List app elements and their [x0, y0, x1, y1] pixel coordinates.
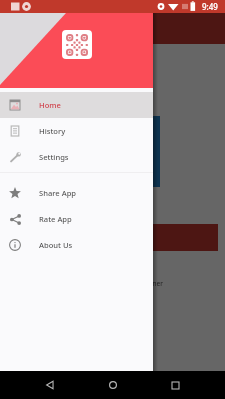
- button[interactable]: Rate App: [0, 206, 153, 232]
- button[interactable]: Home: [0, 92, 153, 118]
- staticText: Settings: [39, 152, 69, 162]
- button[interactable]: Back: [38, 373, 62, 397]
- button[interactable]: Recents: [163, 373, 187, 397]
- staticText: QR Code Scanner: [110, 279, 163, 288]
- button[interactable]: About Us: [0, 232, 153, 258]
- button[interactable]: Home: [101, 373, 125, 397]
- staticText: History: [39, 126, 66, 136]
- staticText: About Us: [39, 240, 73, 250]
- button[interactable]: Settings: [0, 144, 153, 170]
- staticText: 9:49: [202, 1, 218, 12]
- staticText: Share App: [39, 188, 77, 198]
- button[interactable]: Share App: [0, 180, 153, 206]
- staticText: Rate App: [39, 214, 72, 224]
- button[interactable]: History: [0, 118, 153, 144]
- staticText: Home: [39, 100, 61, 110]
